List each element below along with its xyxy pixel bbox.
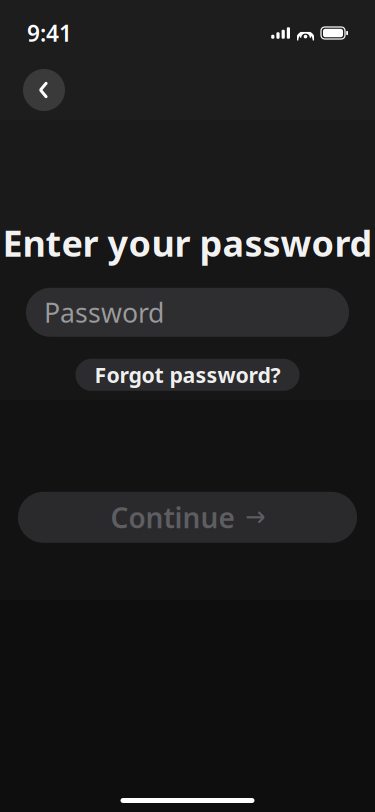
staticText: Forgot password?: [94, 361, 280, 389]
button[interactable]: Back: [23, 69, 65, 111]
button[interactable]: Password: [26, 288, 349, 337]
button[interactable]: Continue: [18, 492, 357, 543]
staticText: Password: [44, 295, 164, 330]
staticText: 9:41: [27, 18, 72, 48]
staticText: Continue: [110, 499, 234, 536]
button[interactable]: Forgot password?: [75, 359, 299, 391]
staticText: Enter your password: [2, 219, 372, 267]
